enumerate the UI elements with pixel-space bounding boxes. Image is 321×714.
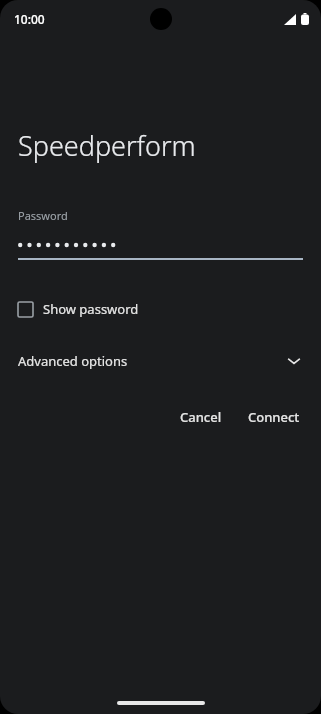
staticText: Advanced options: [18, 352, 128, 370]
button[interactable]: Connect: [240, 402, 308, 432]
button[interactable]: [18, 237, 303, 253]
button[interactable]: Show password: [0, 296, 321, 322]
button[interactable]: Cancel: [172, 402, 230, 432]
staticText: Cancel: [180, 408, 222, 426]
other: Expand advanced options: [285, 352, 303, 370]
staticText: Show password: [43, 300, 139, 318]
staticText: Connect: [248, 408, 300, 426]
staticText: Password: [18, 208, 68, 223]
staticText: 10:00: [14, 11, 45, 27]
staticText: Speedperform: [18, 127, 196, 164]
button[interactable]: Advanced options: [0, 346, 321, 376]
